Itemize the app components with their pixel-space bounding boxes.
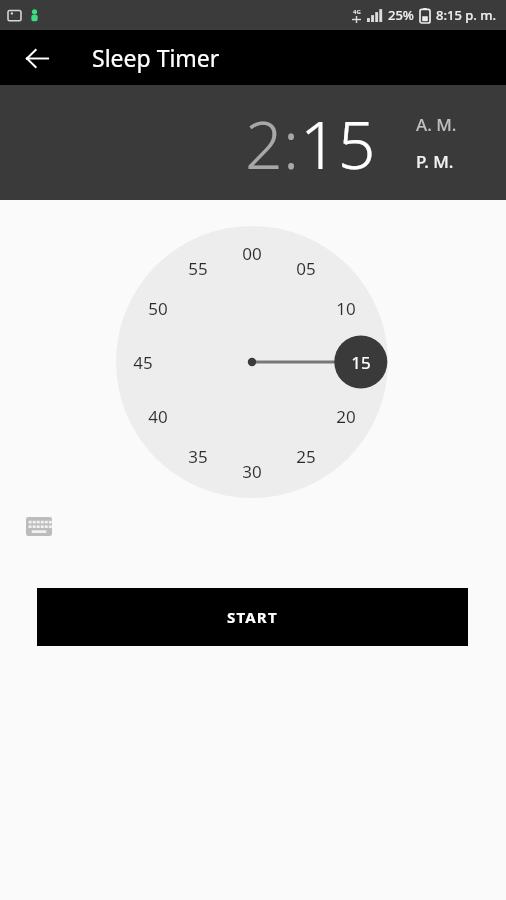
staticText: 55 xyxy=(188,257,208,280)
staticText: 05 xyxy=(296,257,316,280)
staticText: 15 xyxy=(351,351,371,374)
staticText: 45 xyxy=(133,351,153,374)
button[interactable]: START xyxy=(37,588,468,646)
staticText: : xyxy=(283,98,300,188)
staticText: 40 xyxy=(148,405,168,428)
staticText: 4G xyxy=(353,8,361,16)
button[interactable]: Back xyxy=(14,35,60,81)
staticText: 35 xyxy=(188,445,208,468)
button[interactable]: Minute dial xyxy=(116,226,388,498)
staticText: 20 xyxy=(336,405,356,428)
button[interactable]: 15 xyxy=(300,98,376,188)
staticText: 50 xyxy=(148,297,168,320)
staticText: 25 xyxy=(296,445,316,468)
staticText: 10 xyxy=(336,297,356,320)
staticText: 00 xyxy=(242,242,262,265)
staticText: 25% xyxy=(388,6,414,24)
staticText: 30 xyxy=(242,460,262,483)
button[interactable]: P. M. xyxy=(416,150,454,173)
button[interactable]: 2 xyxy=(245,98,283,188)
staticText: 8:15 p. m. xyxy=(436,6,497,24)
button[interactable]: A. M. xyxy=(416,113,457,136)
staticText: Sleep Timer xyxy=(92,42,220,73)
button[interactable]: Switch to keyboard input xyxy=(22,509,56,543)
staticText: START xyxy=(227,607,278,627)
